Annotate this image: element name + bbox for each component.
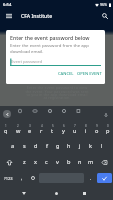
- staticText: b: [67, 158, 71, 166]
- button[interactable]: Shift: [0, 154, 18, 170]
- staticText: j: [79, 142, 81, 150]
- staticText: ,: [21, 175, 23, 182]
- button[interactable]: Theme: [59, 106, 68, 115]
- staticText: 96%: [100, 2, 108, 7]
- button[interactable]: Home: [50, 187, 62, 199]
- button[interactable]: j: [74, 138, 85, 154]
- staticText: 8: [85, 124, 87, 128]
- button[interactable]: Back: [18, 187, 30, 199]
- staticText: Enter the event password below: [10, 34, 90, 41]
- staticText: CFA Institute: [21, 12, 53, 19]
- staticText: 0: [107, 124, 109, 128]
- button[interactable]: Clipboard: [15, 106, 24, 115]
- staticText: n: [78, 158, 82, 166]
- button[interactable]: a: [7, 138, 19, 154]
- staticText: p: [106, 127, 110, 135]
- button[interactable]: 5: [47, 122, 58, 138]
- staticText: x: [34, 158, 37, 166]
- button[interactable]: l: [96, 138, 107, 154]
- button[interactable]: h: [63, 138, 74, 154]
- staticText: i: [85, 127, 87, 135]
- staticText: t: [51, 127, 54, 135]
- staticText: OPEN EVENT: [77, 71, 102, 77]
- staticText: Enter the event password from the app do…: [10, 42, 89, 54]
- button[interactable]: v: [52, 154, 63, 170]
- button[interactable]: Backspace: [96, 154, 113, 170]
- staticText: d: [34, 142, 38, 150]
- button[interactable]: c: [41, 154, 52, 170]
- button[interactable]: 6: [58, 122, 69, 138]
- button[interactable]: .: [85, 170, 96, 186]
- button[interactable]: n: [74, 154, 85, 170]
- button[interactable]: Settings: [45, 106, 54, 115]
- button[interactable]: 1: [0, 122, 12, 138]
- staticText: ?123: [4, 176, 13, 181]
- button[interactable]: Close toolbar: [3, 110, 11, 118]
- staticText: w: [16, 127, 21, 135]
- button[interactable]: Recent apps: [78, 187, 90, 199]
- staticText: c: [45, 158, 48, 166]
- button[interactable]: ,: [16, 170, 27, 186]
- button[interactable]: s: [19, 138, 30, 154]
- button[interactable]: b: [63, 154, 74, 170]
- staticText: h: [67, 142, 71, 150]
- staticText: 6:54: [3, 2, 12, 8]
- button[interactable]: Voice input: [101, 110, 110, 119]
- button[interactable]: 9: [91, 122, 102, 138]
- staticText: k: [89, 142, 92, 150]
- staticText: u: [73, 127, 77, 135]
- staticText: 1: [5, 124, 7, 128]
- button[interactable]: OPEN EVENT: [74, 69, 105, 79]
- staticText: 9: [96, 124, 98, 128]
- staticText: z: [23, 158, 26, 166]
- staticText: 2: [17, 124, 19, 128]
- button[interactable]: x: [30, 154, 41, 170]
- button[interactable]: ?123: [0, 170, 16, 186]
- staticText: Event password: [11, 59, 42, 65]
- staticText: f: [46, 142, 48, 150]
- staticText: .: [90, 175, 92, 182]
- staticText: q: [4, 127, 8, 135]
- staticText: v: [56, 158, 59, 166]
- staticText: o: [95, 127, 99, 135]
- staticText: 7: [74, 124, 76, 128]
- button[interactable]: 4: [36, 122, 47, 138]
- button[interactable]: GIF: [30, 106, 39, 115]
- button[interactable]: 3: [24, 122, 36, 138]
- button[interactable]: 8: [80, 122, 91, 138]
- staticText: y: [62, 127, 65, 135]
- button[interactable]: k: [85, 138, 96, 154]
- button[interactable]: Translate: [74, 106, 83, 115]
- staticText: e: [28, 127, 32, 135]
- button[interactable]: m: [85, 154, 96, 170]
- button[interactable]: Enter: [97, 173, 112, 183]
- button[interactable]: 0: [102, 122, 113, 138]
- button[interactable]: CANCEL: [55, 69, 77, 79]
- staticText: m: [88, 158, 94, 166]
- button[interactable]: d: [30, 138, 41, 154]
- button[interactable]: Open navigation menu: [2, 9, 15, 22]
- staticText: CANCEL: [58, 71, 74, 77]
- staticText: 3: [29, 124, 31, 128]
- staticText: 4: [41, 124, 43, 128]
- staticText: g: [56, 142, 60, 150]
- staticText: 5: [52, 124, 54, 128]
- button[interactable]: Search: [98, 9, 111, 22]
- button[interactable]: 7: [69, 122, 80, 138]
- button[interactable]: g: [52, 138, 63, 154]
- button[interactable]: Emoji: [27, 170, 38, 186]
- button[interactable]: z: [18, 154, 30, 170]
- button[interactable]: 2: [12, 122, 24, 138]
- staticText: 6: [63, 124, 65, 128]
- staticText: l: [101, 142, 103, 150]
- button[interactable]: f: [41, 138, 52, 154]
- staticText: r: [40, 127, 43, 135]
- staticText: a: [11, 142, 15, 150]
- staticText: s: [23, 142, 26, 150]
